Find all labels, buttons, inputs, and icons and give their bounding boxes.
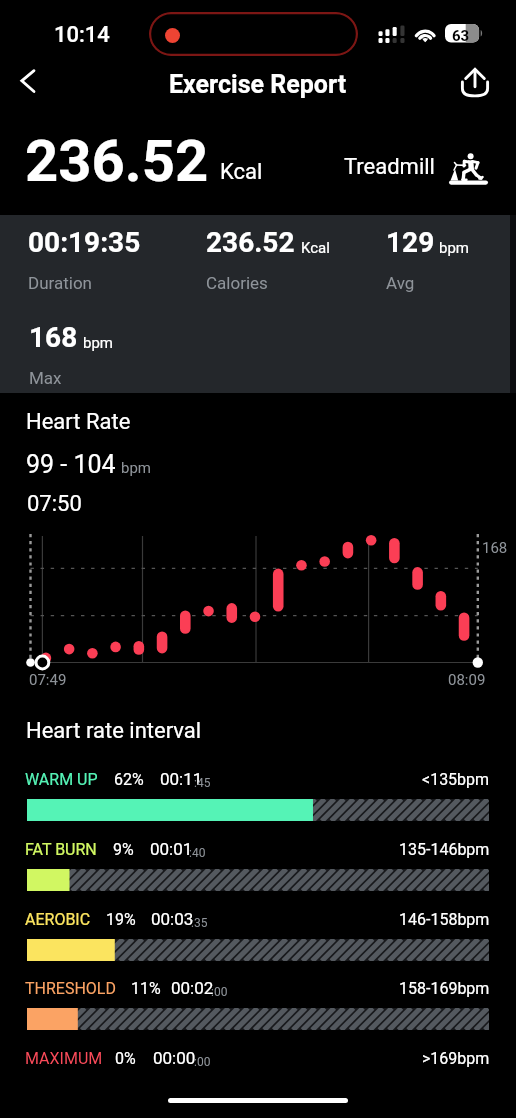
button[interactable]: THRESHOLD (0, 978, 516, 1036)
staticText: THRESHOLD (25, 979, 116, 998)
staticText: Duration (28, 273, 92, 293)
button[interactable]: MAXIMUM (0, 1048, 516, 1106)
staticText: 62% (114, 770, 144, 789)
staticText: 146-158bpm (399, 910, 490, 929)
staticText: Calories (206, 273, 268, 293)
staticText: 168 (482, 539, 508, 557)
staticText: 236.52 (25, 127, 209, 195)
staticText: 00:19:35 (28, 226, 141, 259)
staticText: bpm (439, 239, 469, 257)
staticText: 00:01 (150, 839, 193, 859)
button[interactable]: AEROBIC (0, 909, 516, 967)
staticText: Treadmill (344, 154, 435, 180)
staticText: AEROBIC (25, 910, 91, 929)
staticText: 07:49 (29, 671, 67, 689)
staticText: <135bpm (422, 770, 490, 789)
staticText: 19% (106, 910, 136, 929)
staticText: Heart rate interval (26, 718, 202, 744)
staticText: 158-169bpm (399, 979, 490, 998)
staticText: bpm (83, 334, 113, 352)
staticText: >169bpm (422, 1049, 490, 1068)
staticText: 00:00 (153, 1048, 196, 1068)
staticText: Heart Rate (26, 409, 131, 435)
staticText: FAT BURN (25, 840, 97, 859)
staticText: Max (29, 368, 62, 388)
button[interactable]: WARM UP (0, 769, 516, 827)
staticText: 00:11 (160, 769, 203, 789)
staticText: 129 (386, 226, 435, 259)
staticText: 9% (113, 840, 134, 859)
staticText: :35 (191, 916, 208, 930)
staticText: 99 - 104 (26, 450, 116, 479)
staticText: 63 (452, 27, 470, 45)
staticText: 07:50 (27, 491, 82, 517)
staticText: 10:14 (54, 22, 110, 48)
staticText: Exercise Report (169, 70, 347, 99)
staticText: WARM UP (25, 770, 98, 789)
staticText: Kcal (301, 239, 330, 257)
staticText: Avg (386, 273, 415, 293)
staticText: 08:09 (448, 671, 486, 689)
staticText: 168 (29, 321, 78, 354)
staticText: 11% (131, 979, 161, 998)
staticText: :00 (211, 985, 228, 999)
staticText: 00:03 (151, 909, 194, 929)
staticText: :00 (194, 1055, 211, 1069)
button[interactable]: Share (453, 58, 497, 102)
staticText: :45 (194, 776, 211, 790)
staticText: 0% (115, 1049, 136, 1068)
staticText: 00:02 (171, 978, 214, 998)
staticText: Kcal (220, 159, 263, 185)
staticText: 135-146bpm (399, 840, 490, 859)
staticText: bpm (121, 459, 151, 477)
staticText: MAXIMUM (25, 1049, 103, 1068)
button[interactable]: Back (6, 59, 50, 103)
staticText: :40 (189, 846, 206, 860)
button[interactable]: FAT BURN (0, 839, 516, 897)
staticText: 236.52 (206, 226, 295, 259)
